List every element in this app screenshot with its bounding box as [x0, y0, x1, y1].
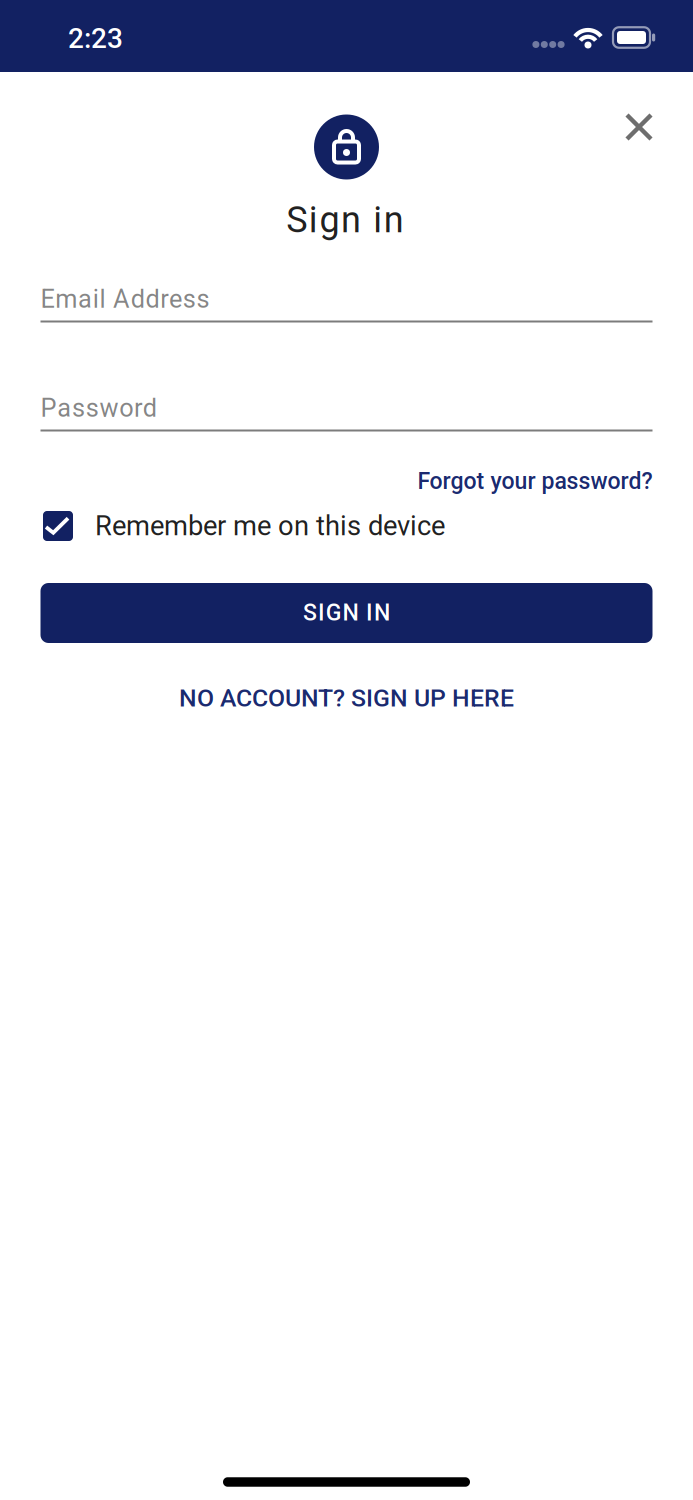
- staticText: Remember me on this device: [95, 510, 445, 542]
- button[interactable]: Email Address: [40, 270, 652, 332]
- staticText: Password: [40, 393, 157, 423]
- staticText: Forgot your password?: [417, 467, 652, 494]
- staticText: 2:23: [68, 22, 123, 55]
- staticText: NO ACCOUNT? SIGN UP HERE: [179, 683, 514, 713]
- staticText: SIGN IN: [303, 599, 390, 626]
- button[interactable]: NO ACCOUNT? SIGN UP HERE: [171, 675, 522, 721]
- button[interactable]: Remember me on this device: [41, 504, 655, 548]
- staticText: Sign in: [286, 199, 404, 241]
- button[interactable]: Forgot your password?: [40, 464, 652, 498]
- staticText: Email Address: [40, 284, 209, 314]
- button[interactable]: [613, 101, 665, 153]
- button[interactable]: Password: [40, 379, 652, 441]
- button[interactable]: SIGN IN: [40, 583, 652, 643]
